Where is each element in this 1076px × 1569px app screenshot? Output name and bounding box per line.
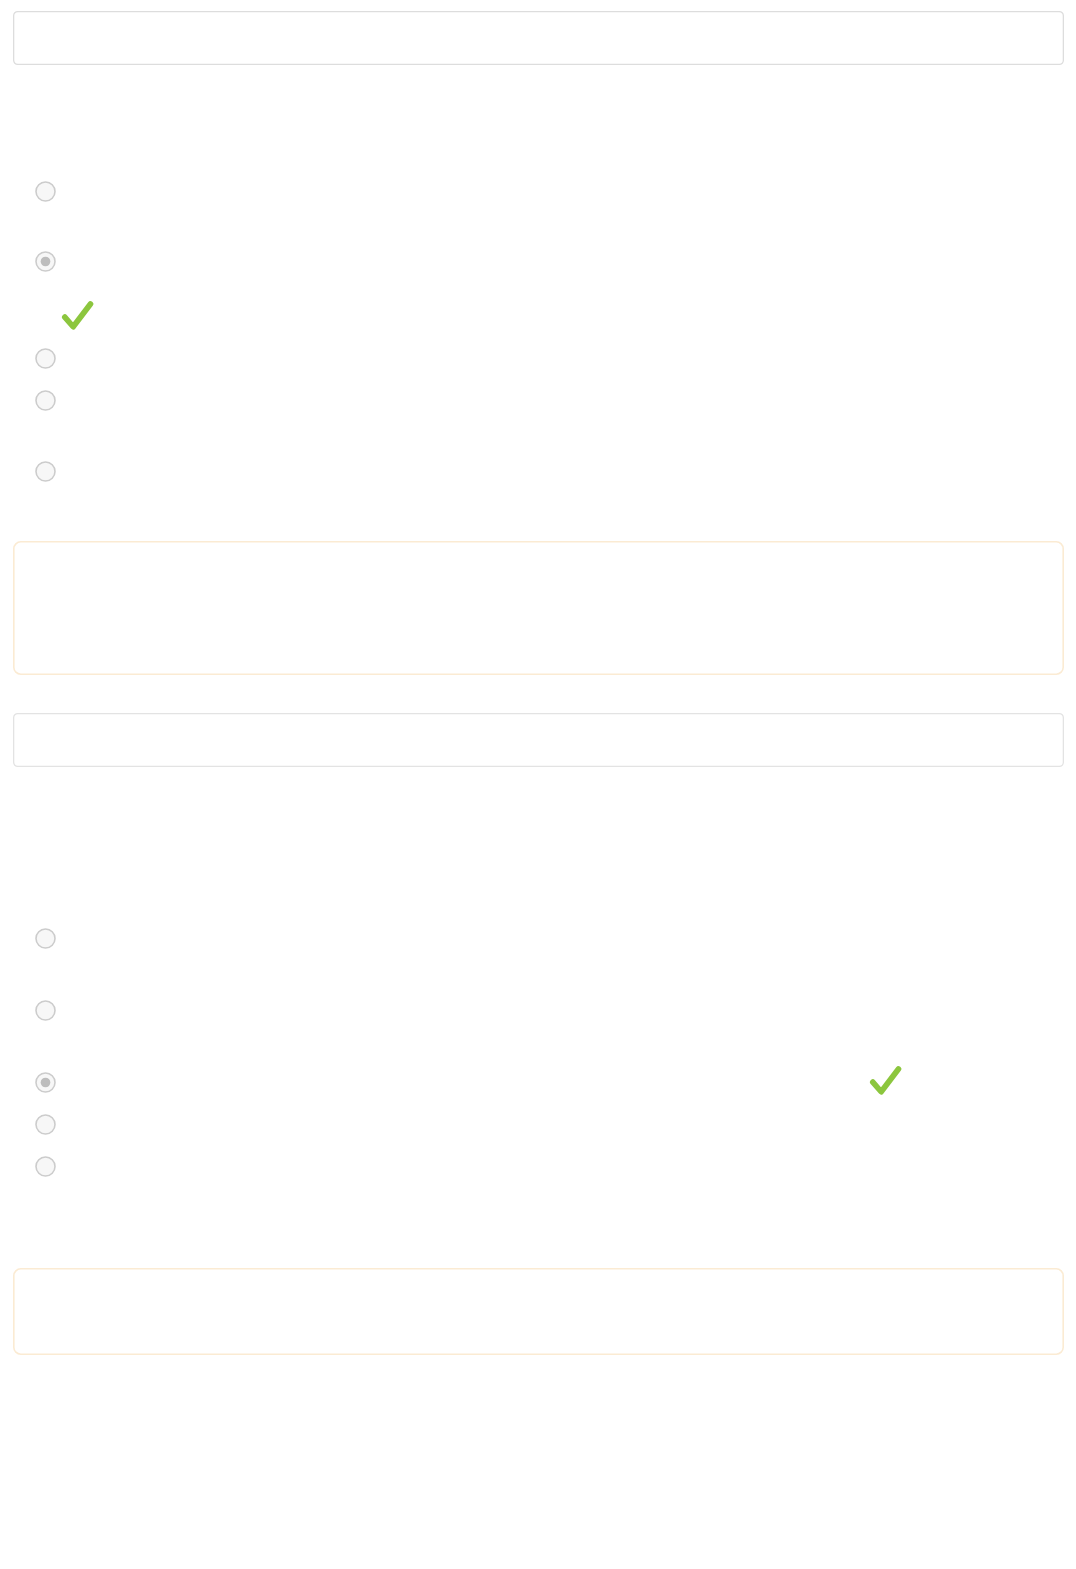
button[interactable]: Option A [35, 928, 56, 949]
button[interactable]: Option E [35, 461, 56, 482]
other: Correct answer [64, 303, 91, 330]
button[interactable]: Option E [35, 1156, 56, 1177]
button[interactable]: Option B [35, 1000, 56, 1021]
button[interactable]: Option C [35, 348, 56, 369]
other: Correct answer [872, 1068, 899, 1095]
button[interactable]: Explanation 2 [13, 1268, 1064, 1355]
button[interactable]: Question 1 [13, 11, 1064, 65]
button[interactable]: Question 2 [13, 713, 1064, 767]
button[interactable]: Option C, selected [35, 1072, 56, 1093]
button[interactable]: Option B, selected [35, 251, 56, 272]
button[interactable]: Option D [35, 390, 56, 411]
button[interactable]: Explanation 1 [13, 541, 1064, 675]
button[interactable]: Option A [35, 181, 56, 202]
button[interactable]: Option D [35, 1114, 56, 1135]
